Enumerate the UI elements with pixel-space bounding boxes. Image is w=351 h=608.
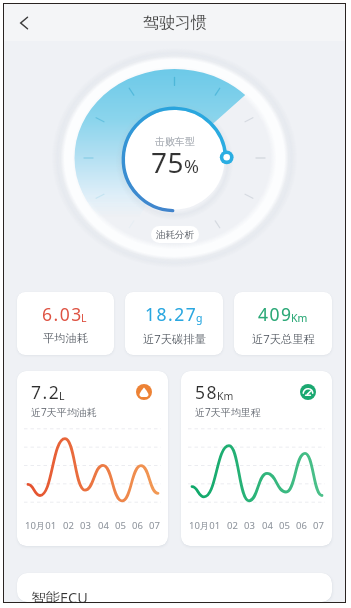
staticText: 03 [244, 519, 255, 532]
staticText: 05 [279, 519, 290, 532]
staticText: 近7天总里程 [252, 331, 315, 346]
staticText: 10月01 [25, 519, 57, 532]
other: Fuel [136, 384, 152, 400]
staticText: 近7天平均里程 [195, 405, 261, 419]
staticText: 05 [115, 519, 126, 532]
staticText: 07 [313, 519, 324, 532]
button[interactable]: Back [9, 8, 39, 38]
staticText: 04 [262, 519, 273, 532]
staticText: 58 [195, 380, 219, 404]
staticText: 02 [63, 519, 74, 532]
staticText: 近7天碳排量 [143, 331, 206, 346]
staticText: 06 [132, 519, 143, 532]
staticText: g [196, 311, 203, 325]
staticText: 03 [80, 519, 91, 532]
staticText: 75 [151, 143, 184, 181]
staticText: L [59, 389, 65, 403]
staticText: 06 [296, 519, 307, 532]
button[interactable]: 智能ECU [17, 573, 332, 602]
staticText: 10月01 [189, 519, 221, 532]
other: Mileage [300, 384, 316, 400]
button[interactable]: 油耗分析 [151, 226, 199, 243]
staticText: 409 [258, 302, 293, 326]
button[interactable]: 6.03 [17, 292, 114, 355]
staticText: 油耗分析 [156, 229, 194, 241]
button[interactable]: 409 [234, 292, 332, 355]
staticText: Km [291, 311, 308, 325]
staticText: 7.2 [31, 380, 61, 404]
staticText: 04 [98, 519, 109, 532]
staticText: 智能ECU [31, 587, 88, 602]
staticText: L [81, 311, 87, 325]
staticText: 18.27 [145, 302, 198, 326]
staticText: 6.03 [42, 302, 83, 326]
staticText: 02 [227, 519, 238, 532]
staticText: 平均油耗 [43, 331, 89, 345]
staticText: 07 [149, 519, 160, 532]
button[interactable]: 58 [181, 371, 332, 546]
button[interactable]: 7.2 [17, 371, 168, 546]
staticText: Km [217, 389, 234, 403]
button[interactable]: 18.27 [125, 292, 223, 355]
staticText: 驾驶习惯 [143, 13, 207, 33]
staticText: 近7天平均油耗 [31, 405, 97, 419]
staticText: 击败车型 [155, 135, 195, 147]
staticText: % [184, 154, 199, 179]
